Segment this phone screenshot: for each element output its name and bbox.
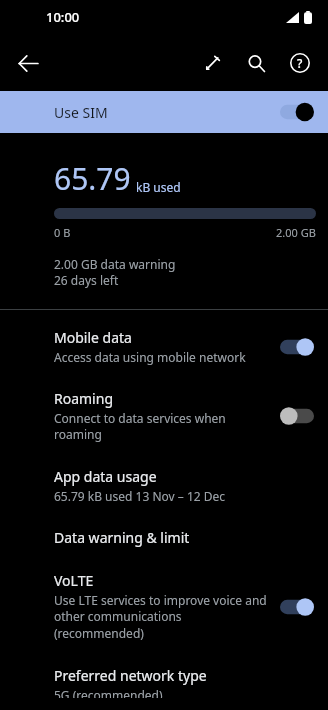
staticText: 5G (recommended) <box>54 687 163 698</box>
button[interactable]: Use SIM <box>0 91 328 133</box>
staticText: Access data using mobile network <box>54 349 246 365</box>
staticText: 0 B <box>54 225 71 240</box>
button[interactable]: Help <box>278 41 322 85</box>
staticText: Use SIM <box>54 103 108 122</box>
staticText: 65.79 <box>54 158 131 199</box>
button[interactable]: App data usage <box>0 455 328 516</box>
staticText: 2.00 GB data warning <box>54 256 176 272</box>
staticText: Use LTE services to improve voice and ot… <box>54 592 272 642</box>
button[interactable]: Roaming <box>0 377 328 455</box>
staticText: Roaming <box>54 389 113 408</box>
staticText: App data usage <box>54 467 157 486</box>
staticText: 10:00 <box>46 8 80 26</box>
button[interactable]: Data warning & limit <box>0 516 328 559</box>
staticText: 26 days left <box>54 272 119 288</box>
button[interactable]: VoLTE <box>0 559 328 654</box>
staticText: 65.79 kB used 13 Nov – 12 Dec <box>54 488 226 504</box>
staticText: 2.00 GB <box>276 225 316 240</box>
staticText: ? <box>297 55 303 71</box>
staticText: Connect to data services when roaming <box>54 410 272 443</box>
staticText: VoLTE <box>54 571 94 590</box>
button[interactable]: Back <box>8 43 48 83</box>
staticText: Data warning & limit <box>54 528 190 547</box>
staticText: kB used <box>136 179 181 195</box>
button[interactable]: Edit <box>190 41 234 85</box>
button[interactable]: Preferred network type <box>0 654 328 710</box>
staticText: Mobile data <box>54 328 132 347</box>
button[interactable]: Search <box>234 41 278 85</box>
staticText: Preferred network type <box>54 666 207 685</box>
button[interactable]: Mobile data <box>0 316 328 377</box>
